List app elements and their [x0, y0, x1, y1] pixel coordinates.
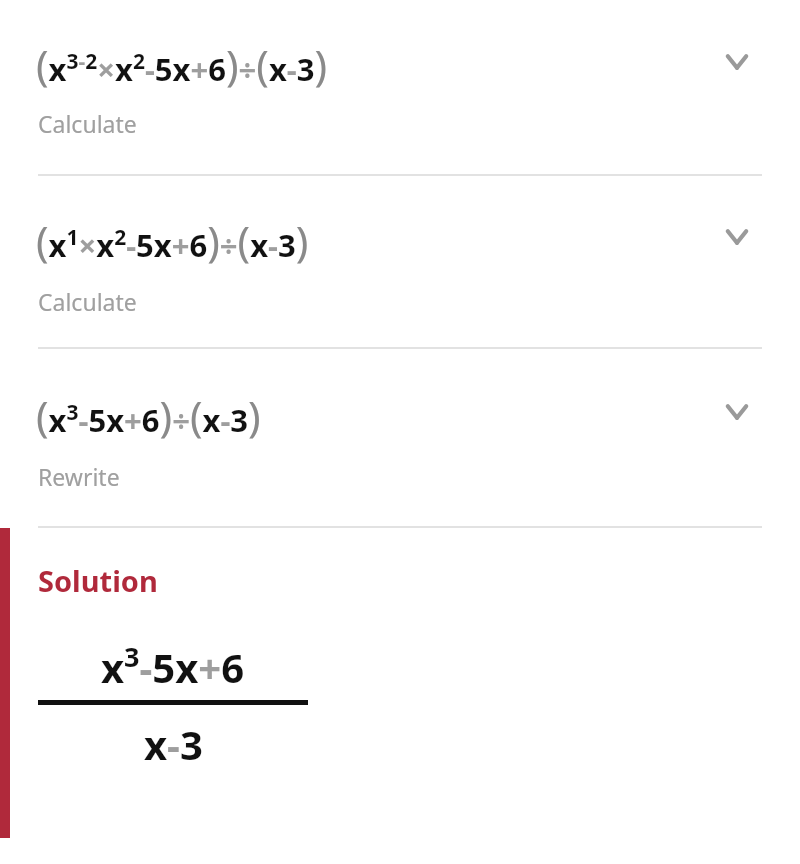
staticText: Solution: [38, 561, 158, 600]
staticText: Rewrite: [38, 461, 120, 492]
other: Expand step: [720, 395, 754, 429]
staticText: (x3-2×x2-5x+6)÷(x-3): [36, 36, 328, 93]
button[interactable]: (x3-2×x2-5x+6)÷(x-3): [0, 0, 800, 174]
button[interactable]: Solution: [0, 528, 800, 838]
staticText: Calculate: [38, 108, 137, 139]
other: Expand step: [720, 45, 754, 79]
staticText: x-3: [144, 717, 203, 771]
staticText: Calculate: [38, 286, 137, 317]
staticText: x3-5x+6: [101, 638, 245, 694]
button[interactable]: (x1×x2-5x+6)÷(x-3): [0, 176, 800, 347]
button[interactable]: (x3-5x+6)÷(x-3): [0, 349, 800, 526]
other: Expand step: [720, 220, 754, 254]
staticText: (x3-5x+6)÷(x-3): [36, 387, 261, 444]
staticText: (x1×x2-5x+6)÷(x-3): [36, 212, 309, 269]
